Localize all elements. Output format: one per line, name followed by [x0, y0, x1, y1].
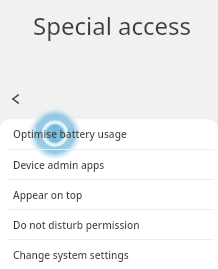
button[interactable]: Back [4, 87, 28, 111]
button[interactable]: Do not disturb permission [0, 210, 218, 239]
button[interactable]: Appear on top [0, 180, 218, 209]
staticText: Appear on top [13, 188, 83, 202]
staticText: Do not disturb permission [13, 218, 140, 232]
staticText: Optimise battery usage [13, 127, 127, 141]
staticText: Change system settings [13, 248, 129, 262]
staticText: Special access [33, 9, 192, 42]
staticText: Device admin apps [13, 158, 105, 172]
button[interactable]: Optimise battery usage [0, 119, 218, 149]
button[interactable]: Device admin apps [0, 150, 218, 179]
button[interactable]: Change system settings [0, 240, 218, 269]
